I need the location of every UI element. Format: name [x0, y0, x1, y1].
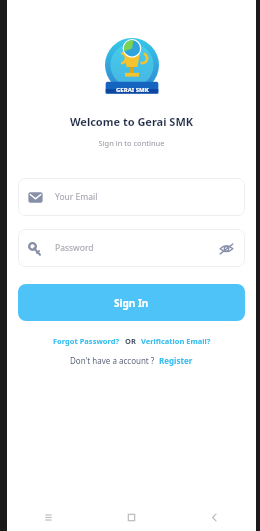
button[interactable]: Back — [173, 503, 256, 531]
button[interactable]: Home — [90, 503, 173, 531]
button[interactable]: Forgot Password? — [53, 336, 120, 346]
staticText: GERAI SMK — [116, 86, 149, 94]
button[interactable]: Recents — [7, 503, 90, 531]
button[interactable]: Verification Email? — [141, 336, 211, 346]
staticText: Welcome to Gerai SMK — [7, 114, 256, 129]
staticText: Password — [55, 242, 217, 254]
staticText: Sign In — [114, 296, 149, 310]
button[interactable]: Show password — [217, 239, 235, 257]
staticText: Don't have a account ? — [70, 355, 155, 366]
button[interactable]: Register — [159, 355, 193, 366]
staticText: Verification Email? — [141, 336, 211, 346]
staticText: Your Email — [55, 191, 98, 203]
button[interactable]: Your Email — [18, 178, 245, 216]
button[interactable]: Sign In — [18, 284, 245, 321]
staticText: Sign in to continue — [7, 138, 256, 148]
staticText: Register — [159, 355, 193, 366]
staticText: Forgot Password? — [53, 336, 120, 346]
staticText: OR — [125, 336, 136, 346]
button[interactable]: Password — [18, 229, 245, 267]
